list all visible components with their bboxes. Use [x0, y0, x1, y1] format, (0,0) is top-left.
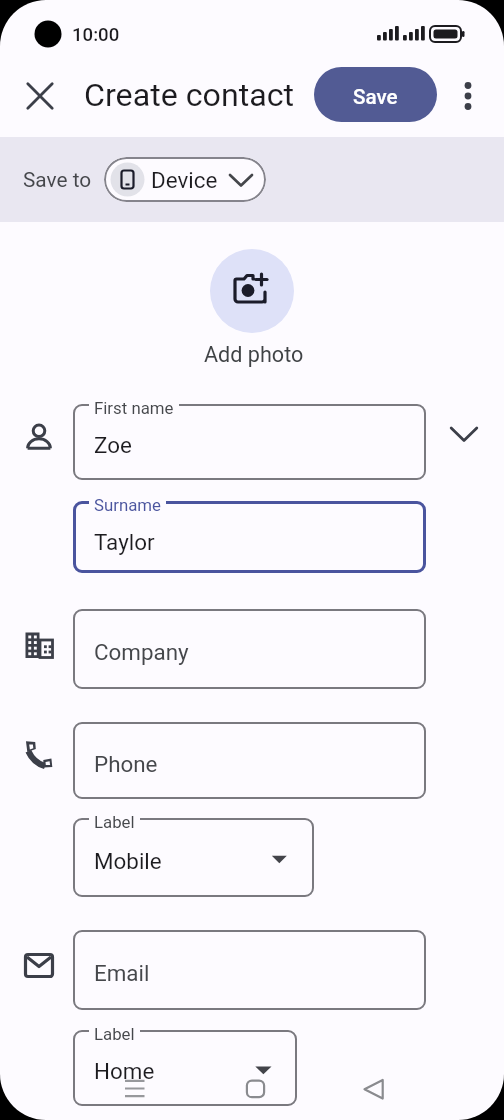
staticText: Save to — [23, 168, 92, 192]
button[interactable]: Mobile — [73, 818, 314, 897]
staticText: Zoe — [94, 432, 132, 458]
staticText: Phone — [94, 751, 158, 777]
button[interactable] — [446, 417, 482, 453]
staticText: Add photo — [204, 342, 304, 367]
staticText: First name — [94, 398, 174, 418]
staticText: Surname — [94, 495, 161, 515]
button[interactable]: Home — [73, 1030, 297, 1106]
button[interactable] — [210, 249, 294, 333]
staticText: Label — [94, 812, 135, 832]
button[interactable]: Device — [104, 157, 266, 202]
button[interactable]: Save — [314, 67, 437, 122]
button[interactable]: Company — [73, 609, 426, 689]
button[interactable] — [450, 77, 488, 115]
staticText: Save — [353, 85, 398, 109]
staticText: Email — [94, 960, 150, 986]
staticText: Mobile — [94, 848, 162, 874]
staticText: Label — [94, 1024, 135, 1044]
staticText: Company — [94, 639, 189, 665]
button[interactable]: Zoe — [73, 404, 426, 480]
staticText: Taylor — [94, 529, 155, 555]
staticText: Create contact — [84, 76, 295, 114]
button[interactable]: Taylor — [73, 501, 426, 573]
button[interactable] — [22, 78, 58, 114]
staticText: 10:00 — [72, 24, 120, 46]
staticText: Device — [151, 167, 218, 193]
button[interactable]: Email — [73, 930, 426, 1010]
staticText: Home — [94, 1058, 155, 1084]
button[interactable]: Phone — [73, 722, 426, 799]
